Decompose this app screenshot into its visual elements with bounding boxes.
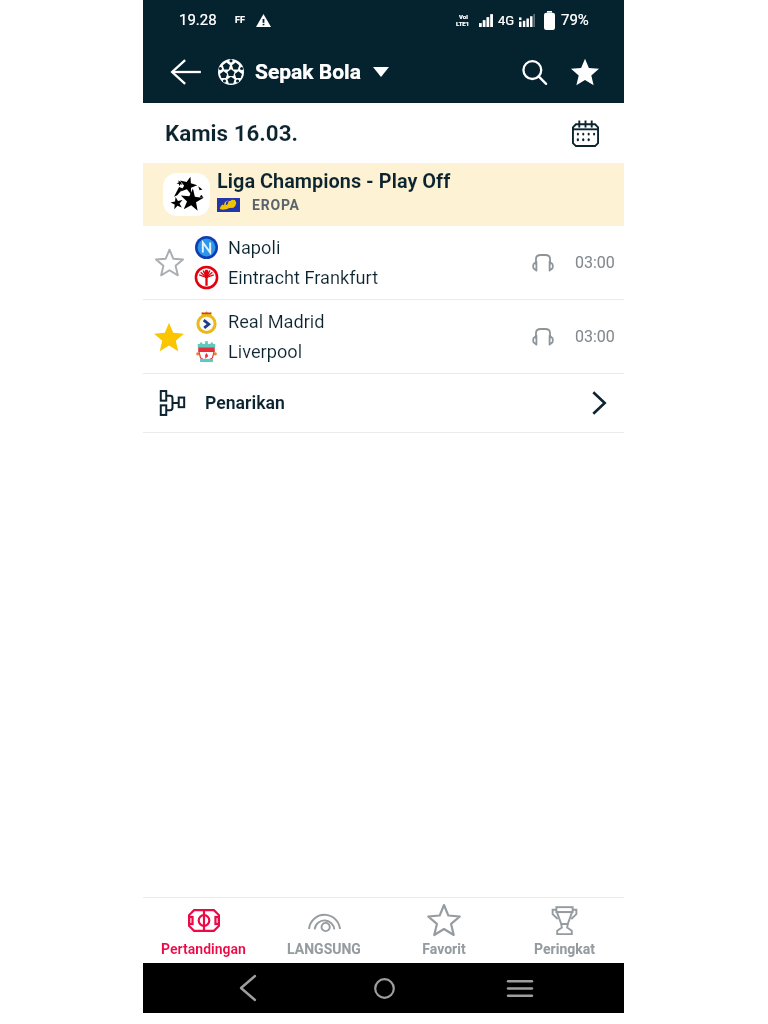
- staticText: Eintracht Frankfurt: [228, 267, 379, 288]
- button[interactable]: Favorite: [143, 300, 624, 373]
- button[interactable]: Back: [179, 963, 316, 1013]
- staticText: Penarikan: [205, 393, 285, 414]
- staticText: Sepak Bola: [255, 60, 361, 85]
- staticText: EROPA: [252, 197, 300, 213]
- staticText: Peringkat: [534, 941, 595, 957]
- button[interactable]: Favorite: [143, 226, 195, 299]
- staticText: Vol: [459, 13, 468, 20]
- staticText: Real Madrid: [228, 311, 325, 332]
- staticText: Pertandingan: [161, 941, 246, 957]
- button[interactable]: Favorite: [143, 300, 195, 373]
- button[interactable]: Favorit: [384, 898, 504, 963]
- staticText: Liverpool: [228, 341, 303, 362]
- button[interactable]: Favorite: [143, 226, 624, 299]
- staticText: LTE1: [456, 20, 470, 27]
- button[interactable]: LANGSUNG: [264, 898, 384, 963]
- button[interactable]: Recents: [452, 963, 588, 1013]
- button[interactable]: Home: [316, 963, 452, 1013]
- staticText: 03:00: [575, 253, 624, 272]
- staticText: 03:00: [575, 327, 624, 346]
- staticText: Favorit: [422, 941, 466, 957]
- staticText: Liga Champions - Play Off: [217, 170, 451, 193]
- button[interactable]: Peringkat: [504, 898, 624, 963]
- staticText: 19.28: [179, 11, 217, 29]
- staticText: FF: [235, 15, 245, 26]
- staticText: Napoli: [228, 237, 281, 258]
- button[interactable]: Penarikan: [143, 374, 624, 432]
- button[interactable]: Calendar: [568, 116, 602, 150]
- staticText: LANGSUNG: [287, 941, 361, 957]
- button[interactable]: Back: [166, 52, 206, 92]
- button[interactable]: Pertandingan: [143, 898, 264, 963]
- staticText: 4G: [498, 13, 515, 28]
- button[interactable]: Sepak Bola: [218, 59, 389, 85]
- staticText: 79%: [561, 11, 589, 29]
- staticText: Kamis 16.03.: [165, 120, 299, 146]
- button[interactable]: Favorites: [564, 51, 606, 93]
- button[interactable]: Liga Champions - Play Off: [143, 163, 624, 226]
- button[interactable]: Search: [513, 51, 555, 93]
